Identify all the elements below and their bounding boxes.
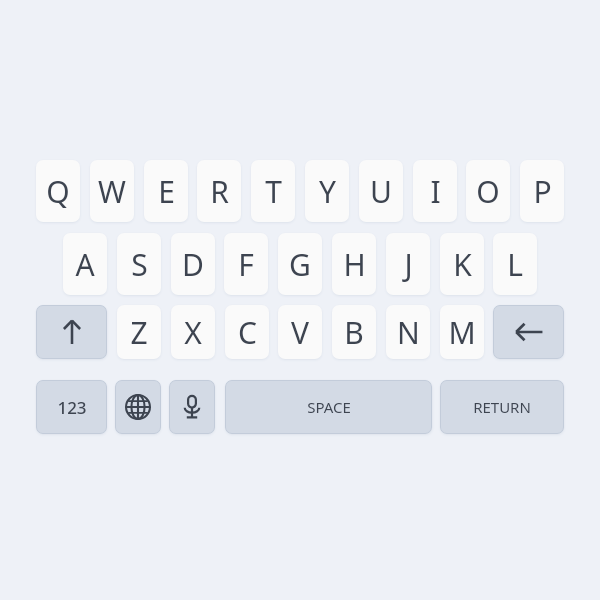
- staticText: M: [448, 312, 476, 353]
- button[interactable]: P: [520, 160, 564, 222]
- staticText: A: [75, 244, 95, 285]
- button[interactable]: G: [278, 233, 322, 295]
- button[interactable]: Q: [36, 160, 80, 222]
- staticText: U: [370, 171, 392, 212]
- staticText: SPACE: [307, 397, 351, 417]
- button[interactable]: M: [440, 305, 484, 359]
- button[interactable]: R: [197, 160, 241, 222]
- staticText: V: [291, 312, 309, 353]
- staticText: G: [289, 244, 311, 285]
- button[interactable]: Backspace: [493, 305, 564, 359]
- button[interactable]: U: [359, 160, 403, 222]
- button[interactable]: F: [224, 233, 268, 295]
- button[interactable]: SPACE: [225, 380, 432, 434]
- staticText: R: [210, 171, 229, 212]
- staticText: C: [238, 312, 257, 353]
- staticText: T: [265, 171, 282, 212]
- staticText: Q: [46, 171, 70, 212]
- button[interactable]: K: [440, 233, 484, 295]
- button[interactable]: H: [332, 233, 376, 295]
- staticText: H: [343, 244, 366, 285]
- button[interactable]: Y: [305, 160, 349, 222]
- button[interactable]: X: [171, 305, 215, 359]
- staticText: Y: [319, 171, 336, 212]
- button[interactable]: A: [63, 233, 107, 295]
- staticText: P: [533, 171, 552, 212]
- button[interactable]: B: [332, 305, 376, 359]
- button[interactable]: Change language: [115, 380, 161, 434]
- button[interactable]: L: [493, 233, 537, 295]
- staticText: S: [131, 244, 148, 285]
- staticText: E: [158, 171, 175, 212]
- staticText: X: [184, 312, 202, 353]
- staticText: W: [98, 171, 126, 212]
- button[interactable]: S: [117, 233, 161, 295]
- staticText: J: [404, 244, 413, 285]
- staticText: O: [476, 171, 500, 212]
- button[interactable]: 123: [36, 380, 107, 434]
- button[interactable]: E: [144, 160, 188, 222]
- button[interactable]: J: [386, 233, 430, 295]
- staticText: D: [182, 244, 204, 285]
- button[interactable]: O: [466, 160, 510, 222]
- button[interactable]: D: [171, 233, 215, 295]
- staticText: K: [453, 244, 472, 285]
- staticText: Z: [130, 312, 148, 353]
- staticText: I: [430, 171, 441, 212]
- staticText: RETURN: [473, 397, 531, 417]
- button[interactable]: RETURN: [440, 380, 564, 434]
- staticText: 123: [57, 396, 87, 419]
- staticText: N: [397, 312, 420, 353]
- button[interactable]: Shift: [36, 305, 107, 359]
- button[interactable]: Voice input: [169, 380, 215, 434]
- button[interactable]: V: [278, 305, 322, 359]
- staticText: F: [238, 244, 254, 285]
- button[interactable]: Z: [117, 305, 161, 359]
- button[interactable]: I: [413, 160, 457, 222]
- button[interactable]: C: [225, 305, 269, 359]
- button[interactable]: W: [90, 160, 134, 222]
- staticText: L: [507, 244, 523, 285]
- button[interactable]: N: [386, 305, 430, 359]
- staticText: B: [344, 312, 364, 353]
- button[interactable]: T: [251, 160, 295, 222]
